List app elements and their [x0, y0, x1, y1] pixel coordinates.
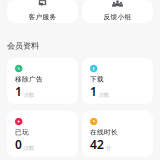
staticText: 1 [15, 83, 22, 99]
staticText: 1 [90, 83, 97, 99]
staticText: 次数 [24, 145, 34, 151]
staticText: 次数 [99, 92, 109, 98]
staticText: 已玩 [15, 128, 29, 136]
staticText: 反馈小组 [103, 13, 131, 21]
button[interactable]: 移除广告 [7, 58, 78, 104]
staticText: 次数 [24, 92, 34, 98]
staticText: 在线时长 [90, 128, 118, 136]
button[interactable]: 已玩 [7, 111, 78, 157]
staticText: 会员资料 [7, 41, 39, 51]
staticText: 下载 [90, 75, 104, 83]
staticText: 客户服务 [28, 13, 56, 21]
staticText: 0 [15, 136, 22, 152]
button[interactable]: 客户服务 [7, 0, 78, 23]
button[interactable]: 反馈小组 [82, 0, 153, 23]
button[interactable]: 在线时长 [82, 111, 153, 157]
button[interactable]: 下载 [82, 58, 153, 104]
staticText: 移除广告 [15, 75, 43, 83]
staticText: 分 [106, 145, 111, 151]
staticText: 42 [90, 136, 104, 152]
